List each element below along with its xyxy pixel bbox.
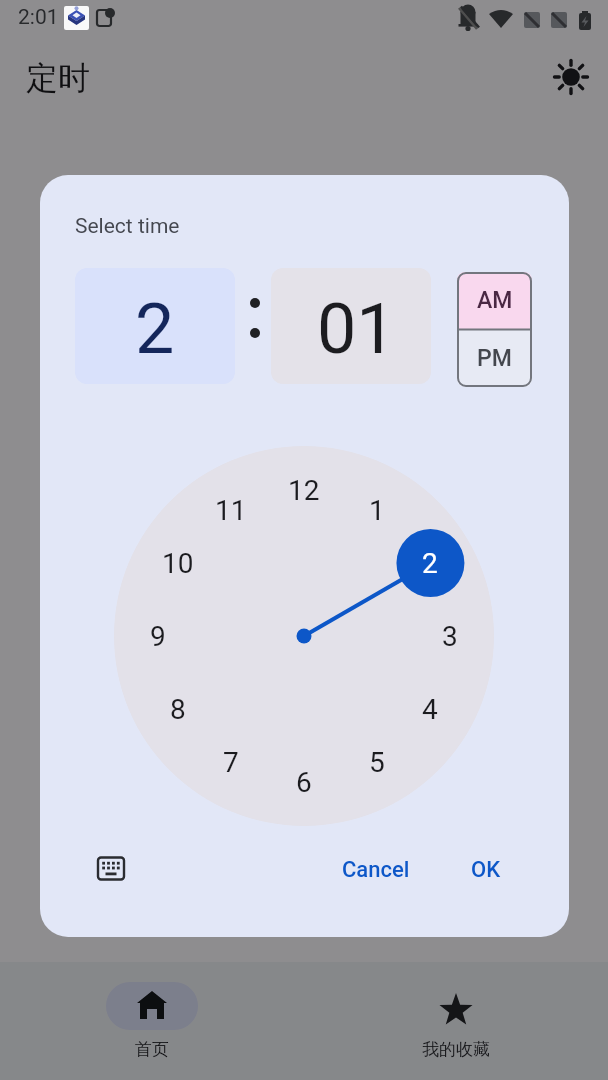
staticText: 2 bbox=[422, 547, 438, 580]
staticText: 我的收藏 bbox=[422, 1039, 490, 1060]
button[interactable]: 2 bbox=[75, 268, 235, 384]
button[interactable]: OK bbox=[456, 852, 516, 888]
staticText: 5 bbox=[369, 746, 385, 779]
staticText: 6 bbox=[296, 766, 312, 799]
button[interactable]: 01 bbox=[271, 268, 431, 384]
staticText: 7 bbox=[223, 746, 239, 779]
staticText: PM bbox=[477, 345, 512, 372]
staticText: 9 bbox=[150, 620, 166, 653]
staticText: 12 bbox=[288, 474, 320, 507]
button[interactable]: 首页 bbox=[0, 962, 304, 1080]
button[interactable] bbox=[88, 846, 134, 892]
staticText: 11 bbox=[215, 494, 247, 527]
staticText: 01 bbox=[317, 288, 396, 370]
button[interactable]: Cancel bbox=[336, 852, 416, 888]
staticText: Select time bbox=[75, 214, 180, 239]
staticText: 2:01 bbox=[18, 5, 59, 30]
staticText: 首页 bbox=[135, 1039, 169, 1060]
staticText: 4 bbox=[422, 693, 438, 726]
button[interactable]: 我的收藏 bbox=[304, 962, 608, 1080]
button[interactable]: PM bbox=[457, 329, 532, 387]
staticText: OK bbox=[471, 857, 501, 883]
button[interactable] bbox=[547, 53, 595, 101]
staticText: 3 bbox=[442, 620, 458, 653]
staticText: Cancel bbox=[342, 857, 410, 883]
staticText: 1 bbox=[369, 494, 385, 527]
staticText: AM bbox=[477, 287, 513, 314]
staticText: 2 bbox=[422, 547, 438, 580]
staticText: 定时 bbox=[26, 58, 90, 98]
staticText: 8 bbox=[170, 693, 186, 726]
button[interactable]: AM bbox=[457, 272, 532, 329]
staticText: 2 bbox=[135, 288, 175, 370]
staticText: 10 bbox=[162, 547, 194, 580]
